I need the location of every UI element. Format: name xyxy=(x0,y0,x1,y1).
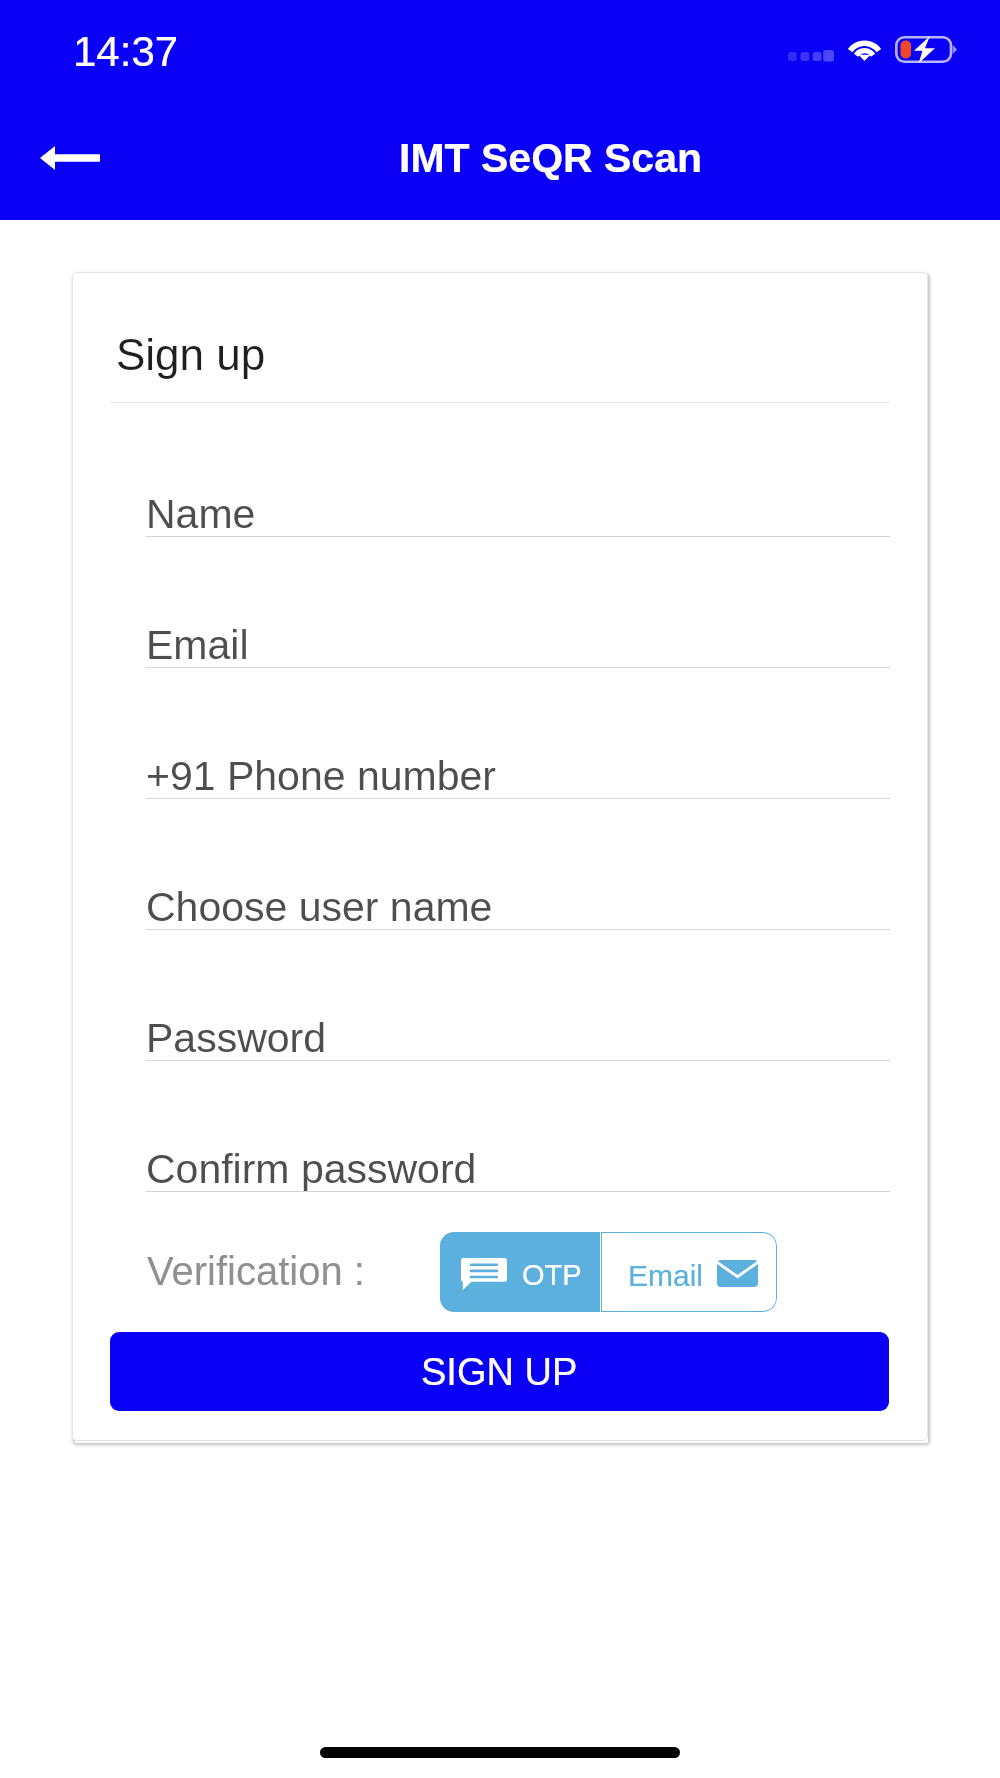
staticText: Email xyxy=(146,622,249,668)
staticText: Name xyxy=(146,491,256,537)
staticText: Email xyxy=(628,1259,704,1293)
staticText: OTP xyxy=(522,1259,582,1291)
staticText: Confirm password xyxy=(146,1146,477,1192)
staticText: Verification : xyxy=(147,1249,365,1294)
staticText: 14:37 xyxy=(73,28,179,75)
staticText: Choose user name xyxy=(146,884,493,930)
button[interactable]: +91 Phone number xyxy=(146,736,890,799)
button[interactable]: Email xyxy=(601,1232,777,1312)
button[interactable]: Choose user name xyxy=(146,867,890,930)
staticText: +91 Phone number xyxy=(146,753,496,799)
button[interactable]: Back xyxy=(0,110,140,206)
button[interactable]: SIGN UP xyxy=(110,1332,889,1411)
button[interactable]: Confirm password xyxy=(146,1129,890,1192)
button[interactable]: Password xyxy=(146,998,890,1061)
button[interactable]: Name xyxy=(146,474,890,537)
staticText: SIGN UP xyxy=(421,1351,578,1393)
button[interactable]: OTP xyxy=(440,1232,600,1312)
staticText: Sign up xyxy=(116,330,266,379)
button[interactable]: Email xyxy=(146,605,890,668)
staticText: IMT SeQR Scan xyxy=(399,135,703,181)
staticText: Password xyxy=(146,1015,327,1061)
